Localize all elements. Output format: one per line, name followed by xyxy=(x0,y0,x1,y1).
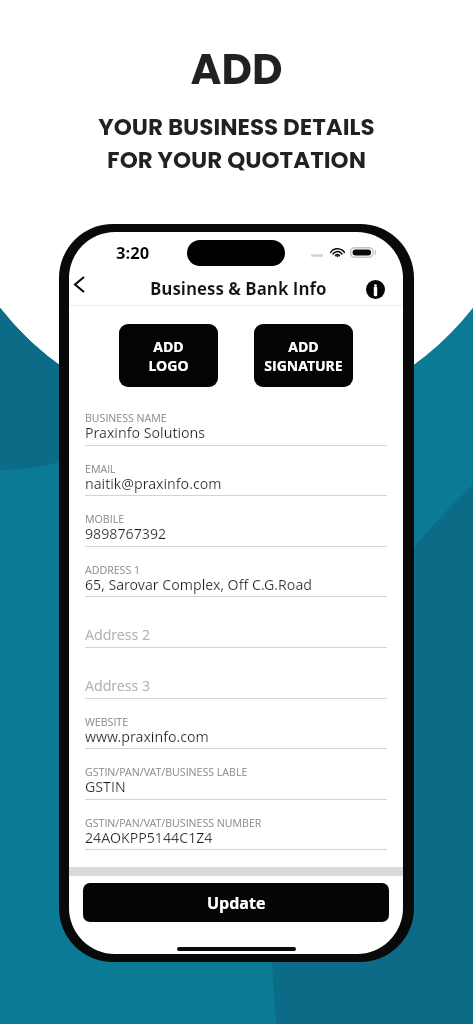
button[interactable]: MOBILE xyxy=(85,496,387,547)
staticText: GSTIN/PAN/VAT/BUSINESS LABLE xyxy=(85,765,248,779)
staticText: Update xyxy=(207,892,266,914)
button[interactable]: GSTIN/PAN/VAT/BUSINESS LABLE xyxy=(85,749,387,800)
button[interactable]: Information xyxy=(361,275,389,303)
staticText: ADD SIGNATURE xyxy=(264,337,343,375)
button[interactable]: Address 2 xyxy=(85,597,387,648)
button[interactable]: Update xyxy=(83,883,389,922)
staticText: 24AOKPP5144C1Z4 xyxy=(85,828,213,847)
staticText: ADDRESS 1 xyxy=(85,563,141,577)
staticText: 3:20 xyxy=(116,241,150,264)
staticText: YOUR BUSINESS DETAILS FOR YOUR QUOTATION xyxy=(0,111,473,176)
button[interactable]: BUSINESS NAME xyxy=(85,395,387,446)
staticText: www.praxinfo.com xyxy=(85,727,209,746)
button[interactable]: GSTIN/PAN/VAT/BUSINESS NUMBER xyxy=(85,800,387,851)
button[interactable]: ADDRESS 1 xyxy=(85,547,387,598)
staticText: Address 3 xyxy=(85,676,151,695)
staticText: MOBILE xyxy=(85,512,125,526)
staticText: Praxinfo Solutions xyxy=(85,423,206,442)
button[interactable]: Back xyxy=(69,270,93,298)
button[interactable]: ADD LOGO xyxy=(119,324,218,387)
button[interactable]: Address 3 xyxy=(85,648,387,699)
staticText: naitik@praxinfo.com xyxy=(85,474,222,493)
button[interactable]: ADD SIGNATURE xyxy=(254,324,353,387)
staticText: 9898767392 xyxy=(85,524,167,543)
staticText: WEBSITE xyxy=(85,715,129,729)
staticText: EMAIL xyxy=(85,462,116,476)
staticText: ADD xyxy=(190,40,283,99)
staticText: Address 2 xyxy=(85,625,151,644)
staticText: Business & Bank Info xyxy=(150,277,327,300)
button[interactable]: WEBSITE xyxy=(85,699,387,750)
button[interactable]: EMAIL xyxy=(85,446,387,497)
staticText: GSTIN/PAN/VAT/BUSINESS NUMBER xyxy=(85,816,262,830)
staticText: ADD LOGO xyxy=(148,337,189,375)
staticText: 65, Sarovar Complex, Off C.G.Road xyxy=(85,575,313,594)
staticText: BUSINESS NAME xyxy=(85,411,167,425)
staticText: GSTIN xyxy=(85,777,126,796)
